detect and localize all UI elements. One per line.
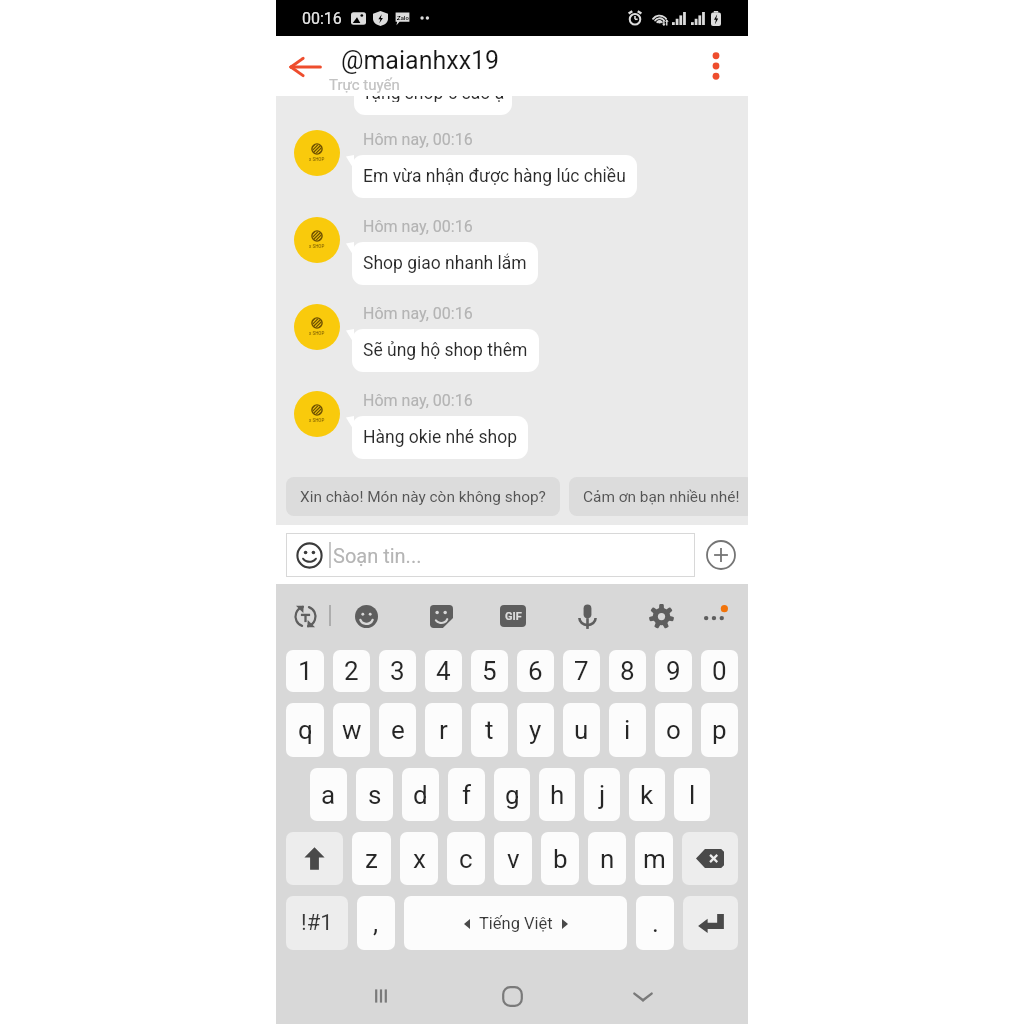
- staticText: @maianhxx19: [341, 46, 500, 75]
- staticText: a: [321, 780, 336, 810]
- button[interactable]: z: [352, 832, 391, 885]
- button[interactable]: Voice input: [568, 597, 606, 635]
- staticText: 2: [344, 656, 359, 686]
- button[interactable]: 3: [379, 650, 416, 692]
- staticText: Shop giao nhanh lắm: [363, 253, 527, 274]
- staticText: o: [666, 715, 681, 745]
- button[interactable]: i: [609, 703, 646, 757]
- button[interactable]: c: [447, 832, 485, 885]
- button[interactable]: 9: [655, 650, 692, 692]
- button[interactable]: Backspace: [682, 832, 738, 885]
- button[interactable]: x: [400, 832, 438, 885]
- button[interactable]: 8: [609, 650, 646, 692]
- button[interactable]: f: [448, 768, 485, 821]
- staticText: e: [391, 715, 405, 745]
- staticText: Hôm nay, 00:16: [363, 217, 473, 236]
- staticText: Zalo: [397, 14, 409, 21]
- staticText: x: [413, 844, 426, 874]
- staticText: q: [298, 715, 313, 745]
- button[interactable]: Enter: [683, 896, 738, 950]
- button[interactable]: u: [563, 703, 600, 757]
- staticText: h: [550, 780, 565, 810]
- button[interactable]: GIF: [494, 597, 532, 635]
- staticText: Trực tuyến: [329, 76, 400, 94]
- button[interactable]: h: [539, 768, 575, 821]
- staticText: t: [485, 715, 494, 745]
- button[interactable]: p: [701, 703, 738, 757]
- staticText: Xin chào! Món này còn không shop?: [300, 488, 546, 506]
- button[interactable]: n: [588, 832, 626, 885]
- staticText: w: [342, 715, 362, 745]
- staticText: s: [368, 780, 382, 810]
- button[interactable]: Soạn tin...: [286, 533, 695, 577]
- staticText: j: [599, 780, 606, 810]
- button[interactable]: 6: [517, 650, 554, 692]
- staticText: m: [643, 844, 666, 874]
- button[interactable]: 0: [701, 650, 738, 692]
- button[interactable]: Cảm ơn bạn nhiều nhé!: [569, 477, 748, 516]
- button[interactable]: j: [584, 768, 620, 821]
- button[interactable]: r: [425, 703, 462, 757]
- staticText: .: [652, 908, 659, 938]
- button[interactable]: a: [310, 768, 347, 821]
- staticText: Cảm ơn bạn nhiều nhé!: [583, 488, 740, 506]
- button[interactable]: v: [494, 832, 532, 885]
- button[interactable]: t: [471, 703, 508, 757]
- button[interactable]: Stickers: [422, 597, 460, 635]
- button[interactable]: ,: [357, 896, 395, 950]
- button[interactable]: 1: [286, 650, 324, 692]
- button[interactable]: q: [286, 703, 324, 757]
- button[interactable]: Settings: [642, 597, 680, 635]
- staticText: 5: [482, 656, 497, 686]
- button[interactable]: Xin chào! Món này còn không shop?: [286, 477, 560, 516]
- staticText: Hôm nay, 00:16: [363, 391, 473, 410]
- button[interactable]: Recents: [355, 970, 407, 1022]
- button[interactable]: !#1: [286, 896, 348, 950]
- button[interactable]: w: [333, 703, 370, 757]
- staticText: x SHOP: [309, 331, 325, 336]
- staticText: Sẽ ủng hộ shop thêm: [363, 340, 528, 361]
- button[interactable]: Translate: [286, 597, 324, 635]
- button[interactable]: Shift: [286, 832, 343, 885]
- staticText: Em vừa nhận được hàng lúc chiều: [363, 166, 626, 187]
- staticText: Hàng okie nhé shop: [363, 427, 517, 448]
- button[interactable]: 5: [471, 650, 508, 692]
- staticText: Soạn tin...: [333, 544, 422, 567]
- button[interactable]: Home: [486, 970, 538, 1022]
- button[interactable]: 7: [563, 650, 600, 692]
- button[interactable]: More options: [684, 36, 748, 96]
- button[interactable]: e: [379, 703, 416, 757]
- button[interactable]: Hide keyboard: [617, 970, 669, 1022]
- staticText: r: [439, 715, 448, 745]
- button[interactable]: Add attachment: [704, 538, 738, 572]
- button[interactable]: k: [629, 768, 665, 821]
- staticText: Tặng shop 5 sao ạ: [362, 96, 505, 102]
- staticText: g: [505, 780, 520, 810]
- button[interactable]: Tiếng Việt: [404, 896, 627, 950]
- staticText: 4: [436, 656, 451, 686]
- staticText: ,: [373, 908, 379, 938]
- button[interactable]: 4: [425, 650, 462, 692]
- button[interactable]: y: [517, 703, 554, 757]
- button[interactable]: b: [541, 832, 579, 885]
- button[interactable]: l: [674, 768, 710, 821]
- staticText: 1: [298, 656, 313, 686]
- button[interactable]: Emoji: [347, 597, 385, 635]
- staticText: 00:16: [302, 9, 342, 28]
- button[interactable]: Back: [276, 36, 336, 96]
- staticText: x SHOP: [309, 244, 325, 249]
- button[interactable]: m: [635, 832, 673, 885]
- staticText: 9: [666, 656, 681, 686]
- staticText: x SHOP: [309, 418, 325, 423]
- staticText: k: [640, 780, 654, 810]
- button[interactable]: s: [356, 768, 393, 821]
- staticText: u: [574, 715, 589, 745]
- button[interactable]: d: [402, 768, 439, 821]
- button[interactable]: .: [636, 896, 674, 950]
- button[interactable]: g: [494, 768, 530, 821]
- button[interactable]: o: [655, 703, 692, 757]
- button[interactable]: 2: [333, 650, 370, 692]
- button[interactable]: More: [696, 597, 734, 635]
- staticText: d: [413, 780, 428, 810]
- staticText: n: [600, 844, 615, 874]
